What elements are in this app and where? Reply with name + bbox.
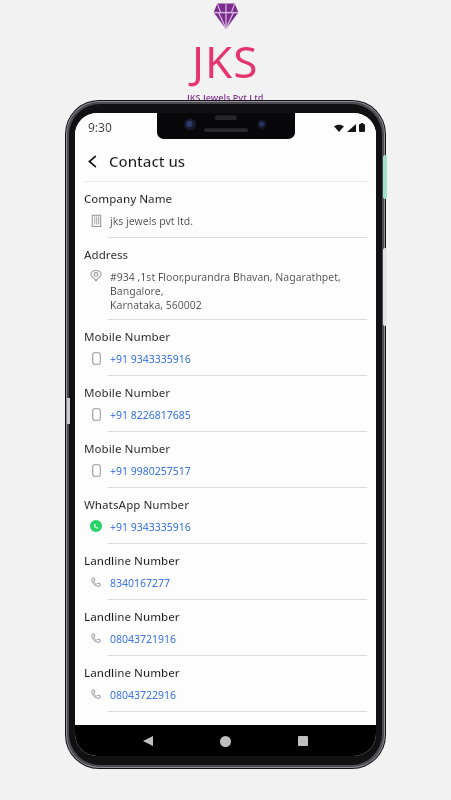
button[interactable]: Mobile Number bbox=[75, 376, 376, 432]
staticText: 08043721916 bbox=[110, 632, 177, 646]
button[interactable]: Mobile Number bbox=[75, 320, 376, 376]
button[interactable]: Home bbox=[212, 728, 238, 754]
button[interactable]: Landline Number bbox=[75, 544, 376, 600]
button[interactable]: Landline Number bbox=[75, 600, 376, 656]
staticText: 8340167277 bbox=[110, 576, 171, 590]
button[interactable]: Company Name bbox=[75, 182, 376, 238]
staticText: Landline Number bbox=[84, 609, 180, 625]
staticText: +91 9980257517 bbox=[110, 464, 191, 478]
staticText: jks jewels pvt ltd. bbox=[110, 214, 194, 228]
staticText: WhatsApp Number bbox=[84, 497, 190, 513]
staticText: Mobile Number bbox=[84, 441, 171, 457]
staticText: 08043722916 bbox=[110, 688, 177, 702]
staticText: Contact us bbox=[109, 151, 186, 171]
staticText: Landline Number bbox=[84, 553, 180, 569]
staticText: Company Name bbox=[84, 191, 173, 207]
button[interactable]: Back bbox=[75, 144, 109, 178]
staticText: JKS bbox=[192, 31, 259, 91]
staticText: #934 ,1st Floor,purandra Bhavan, Nagarat… bbox=[110, 270, 367, 312]
staticText: JKS Jewels Pvt Ltd bbox=[187, 91, 264, 100]
staticText: Mobile Number bbox=[84, 329, 171, 345]
button[interactable]: Landline Number bbox=[75, 656, 376, 712]
button[interactable]: Recent apps bbox=[290, 728, 316, 754]
staticText: +91 9343335916 bbox=[110, 520, 191, 534]
staticText: Mobile Number bbox=[84, 385, 171, 401]
button[interactable]: Mobile Number bbox=[75, 432, 376, 488]
staticText: Address bbox=[84, 247, 129, 263]
button[interactable]: Address bbox=[75, 238, 376, 320]
staticText: Landline Number bbox=[84, 665, 180, 681]
staticText: +91 9343335916 bbox=[110, 352, 191, 366]
staticText: 9:30 bbox=[88, 119, 112, 135]
button[interactable]: Back bbox=[135, 728, 161, 754]
staticText: +91 8226817685 bbox=[110, 408, 191, 422]
button[interactable]: WhatsApp Number bbox=[75, 488, 376, 544]
